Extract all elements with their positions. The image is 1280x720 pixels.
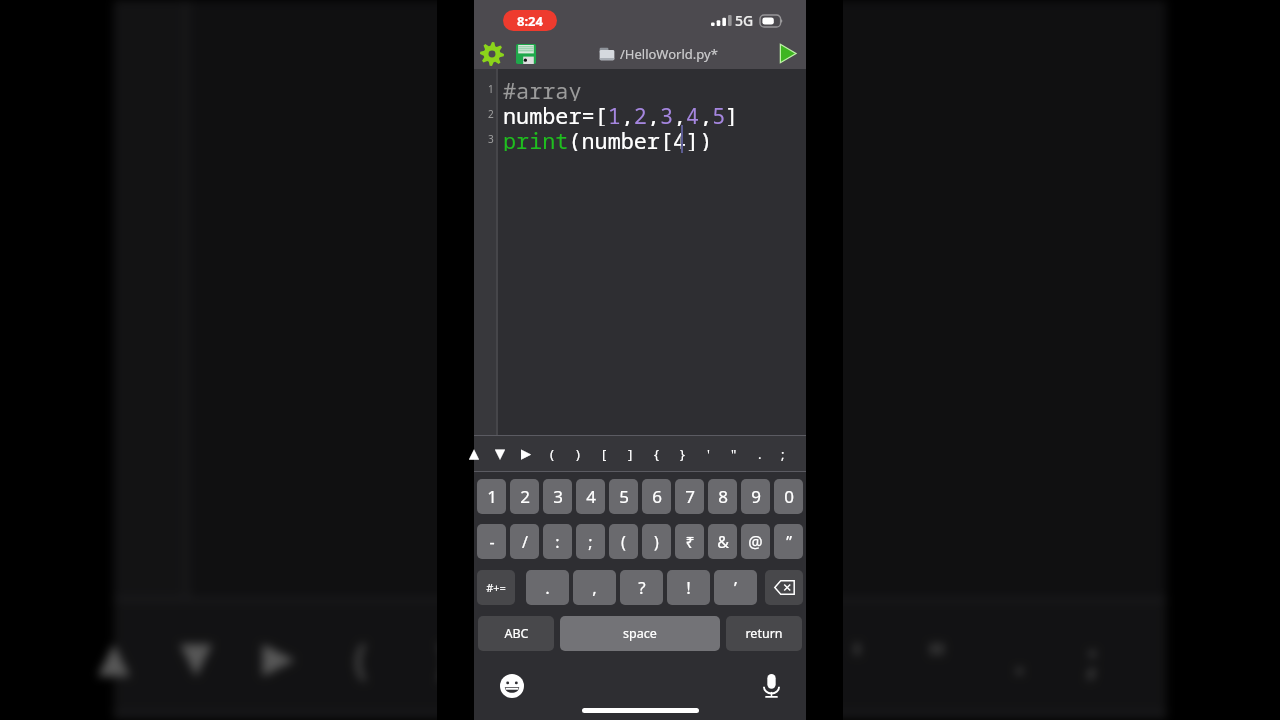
button[interactable]: Insert { [649,598,732,715]
button[interactable]: ” [774,524,803,559]
button[interactable]: Insert } [669,435,695,472]
button[interactable]: 8 [708,479,737,514]
button[interactable]: Insert [ [485,598,567,715]
staticText: ) [654,531,659,553]
button[interactable]: ! [667,570,710,605]
button[interactable]: Insert ' [695,435,721,472]
staticText: 2 [520,485,530,508]
button[interactable]: Insert ] [617,435,643,472]
button[interactable]: 0 [774,479,803,514]
staticText: space [623,625,657,642]
button[interactable]: Save file [510,38,541,69]
button[interactable]: Insert [ [591,435,617,472]
button[interactable]: Insert . [747,435,773,472]
button[interactable]: , [573,570,616,605]
staticText: ▲ [98,633,130,680]
staticText: , [592,576,597,599]
staticText: " [731,445,737,463]
staticText: / [522,531,528,553]
button[interactable]: - [477,524,506,559]
button[interactable]: #+= [477,570,515,605]
button[interactable]: 1 [477,479,506,514]
staticText: { [654,445,659,463]
staticText: ( [621,531,626,553]
staticText: 0 [784,485,794,508]
button[interactable]: 9 [741,479,770,514]
staticText: ? [638,576,646,599]
button[interactable]: Insert ( [539,435,565,472]
button[interactable]: Backspace [765,570,803,605]
button[interactable]: Insert ▼ [155,598,237,715]
button[interactable]: Insert ▲ [461,435,487,472]
staticText: 1 [488,82,494,96]
staticText: number=[1,2,3,4,5] [503,101,739,126]
staticText: ' [852,629,862,686]
button[interactable]: Insert ( [320,598,402,715]
button[interactable]: ’ [714,570,757,605]
button[interactable]: Insert ) [565,435,591,472]
button[interactable]: Run program [772,38,803,69]
staticText: ▶ [263,633,294,680]
staticText: ; [1087,629,1100,686]
button[interactable]: Insert ▲ [73,598,155,715]
staticText: return [745,625,783,642]
button[interactable]: ( [609,524,638,559]
button[interactable]: 7 [675,479,704,514]
button[interactable]: return [726,616,802,651]
button[interactable]: 2 [510,479,539,514]
staticText: 9 [751,485,761,508]
button[interactable]: 6 [642,479,671,514]
staticText: ; [781,445,785,463]
staticText: ABC [504,625,529,642]
staticText: ₹ [685,531,695,553]
staticText: 1 [487,485,497,508]
button[interactable]: . [526,570,569,605]
button[interactable]: Insert ) [402,598,485,715]
staticText: ; [588,531,593,553]
staticText: . [758,445,762,463]
button[interactable]: 5 [609,479,638,514]
staticText: ' [707,445,710,463]
button[interactable]: Insert ; [773,435,793,472]
staticText: { [684,629,700,686]
staticText: ▲ [469,446,479,461]
button[interactable]: Insert { [643,435,669,472]
staticText: 7 [685,485,695,508]
button[interactable]: Insert " [721,435,747,472]
button[interactable]: Dictate [756,671,786,701]
staticText: 6 [652,485,662,508]
staticText: - [489,531,495,553]
button[interactable]: Insert ▼ [487,435,513,472]
staticText: 4 [586,485,596,508]
button[interactable]: ? [620,570,663,605]
staticText: ▼ [495,446,505,461]
button[interactable]: & [708,524,737,559]
button[interactable]: ; [576,524,605,559]
button[interactable]: Insert ] [567,598,649,715]
button[interactable]: Emoji keyboard [497,671,527,701]
button[interactable]: 3 [543,479,572,514]
button[interactable]: ₹ [675,524,704,559]
button[interactable]: ABC [478,616,554,651]
button[interactable]: Settings [476,38,507,69]
button[interactable]: / [510,524,539,559]
staticText: ] [602,629,618,686]
button[interactable]: Insert ▶ [237,598,320,715]
button[interactable]: : [543,524,572,559]
staticText: ) [576,445,580,463]
staticText: #array [503,76,582,101]
button[interactable]: ) [642,524,671,559]
button[interactable]: Insert } [732,598,814,715]
button[interactable]: 4 [576,479,605,514]
button[interactable]: Insert ' [814,598,897,715]
button[interactable]: Insert ▶ [513,435,539,472]
staticText: } [680,445,685,463]
staticText: 8 [718,485,728,508]
button[interactable]: space [560,616,720,651]
button[interactable]: @ [741,524,770,559]
staticText: } [767,629,783,686]
